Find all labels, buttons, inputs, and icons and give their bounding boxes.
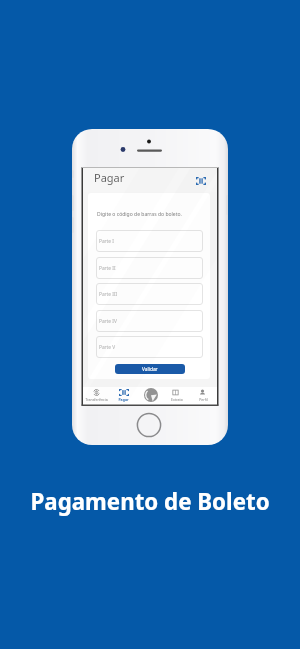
staticText: Extrato: [171, 397, 183, 402]
button[interactable]: Parte IV: [96, 310, 203, 332]
button[interactable]: Escanear código de barras: [189, 171, 213, 190]
staticText: Transferência: [85, 397, 108, 402]
staticText: Perfil: [199, 397, 208, 402]
button[interactable]: Validar: [115, 364, 185, 374]
button[interactable]: Parte I: [96, 230, 203, 252]
button[interactable]: Início: [137, 385, 164, 405]
staticText: Pagar: [118, 397, 129, 402]
staticText: Parte IV: [99, 318, 117, 325]
staticText: Validar: [142, 366, 158, 373]
button[interactable]: Extrato: [163, 387, 190, 405]
staticText: Pagamento de Boleto: [0, 486, 300, 516]
button[interactable]: Parte V: [96, 336, 203, 358]
button[interactable]: Transferência: [83, 387, 110, 405]
staticText: Parte V: [99, 344, 116, 351]
staticText: Parte II: [99, 265, 116, 272]
button[interactable]: Parte III: [96, 283, 203, 305]
staticText: Pagar: [94, 170, 125, 185]
button[interactable]: Parte II: [96, 257, 203, 279]
button[interactable]: Pagar: [110, 387, 137, 405]
button[interactable]: Perfil: [190, 387, 217, 405]
staticText: Parte I: [99, 238, 114, 245]
staticText: Digite o código de barras do boleto.: [97, 211, 182, 218]
staticText: Parte III: [99, 291, 118, 298]
